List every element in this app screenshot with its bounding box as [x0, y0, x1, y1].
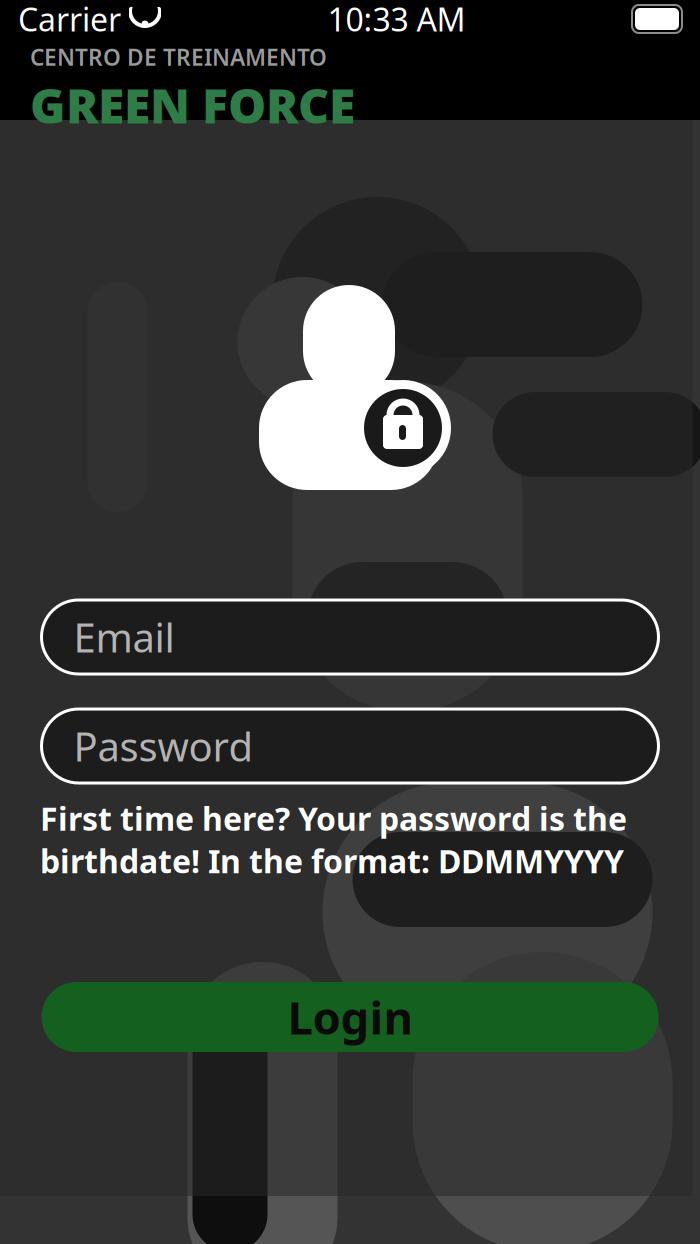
staticText: Login	[287, 987, 412, 1047]
staticText: First time here? Your password is the bi…	[40, 797, 627, 882]
button[interactable]: Email	[41, 600, 658, 674]
button[interactable]: Password	[41, 709, 658, 783]
staticText: Password	[73, 719, 253, 772]
staticText: Email	[73, 610, 174, 663]
staticText: GREEN FORCE	[30, 73, 355, 137]
staticText: Carrier	[18, 0, 121, 40]
staticText: CENTRO DE TREINAMENTO	[30, 42, 327, 72]
button[interactable]: Login	[41, 982, 658, 1052]
staticText: 10:33 AM	[327, 0, 465, 40]
